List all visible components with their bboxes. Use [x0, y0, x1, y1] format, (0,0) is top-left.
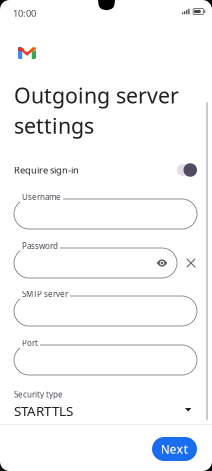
- staticText: Username: [22, 192, 61, 202]
- button[interactable]: Next: [152, 437, 197, 461]
- button[interactable]: Security type: [14, 389, 197, 423]
- staticText: Require sign-in: [14, 164, 79, 176]
- staticText: Next: [160, 441, 188, 457]
- staticText: settings: [14, 111, 94, 140]
- button[interactable]: Show password: [154, 255, 170, 271]
- staticText: Port: [22, 338, 38, 348]
- staticText: SMTP server: [22, 289, 68, 299]
- button[interactable]: Require sign-in: [14, 162, 197, 178]
- staticText: STARTTLS: [14, 402, 73, 420]
- button[interactable]: Clear password: [182, 254, 200, 272]
- staticText: Password: [22, 241, 58, 251]
- staticText: 10:00: [13, 7, 36, 19]
- staticText: Security type: [14, 389, 63, 400]
- staticText: Outgoing server: [14, 81, 179, 109]
